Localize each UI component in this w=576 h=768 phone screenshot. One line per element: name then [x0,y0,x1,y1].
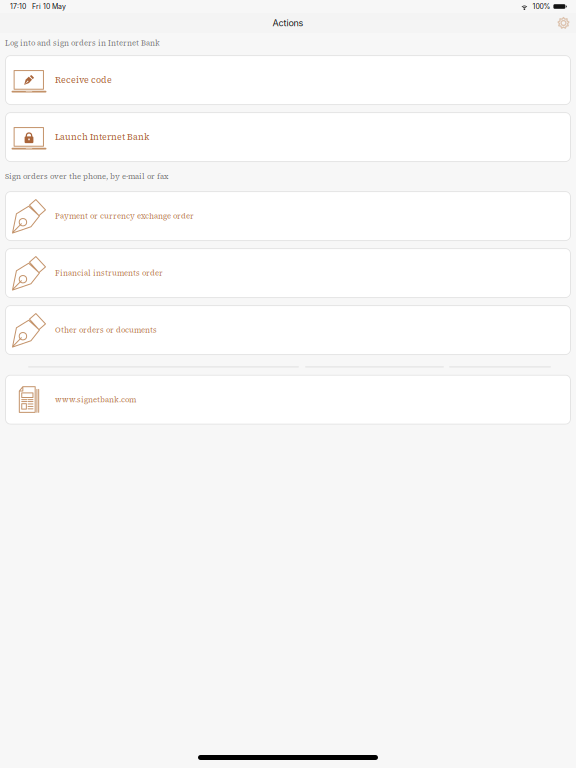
staticText: Log into and sign orders in Internet Ban… [5,38,160,48]
staticText: 17:10 [10,2,26,11]
button[interactable]: Other orders or documents [5,305,571,355]
staticText: Sign orders over the phone, by e-mail or… [5,171,168,182]
staticText: Launch Internet Bank [55,131,149,143]
button[interactable]: Launch Internet Bank [5,112,571,162]
staticText: Actions [272,17,303,28]
button[interactable]: Settings [553,13,574,32]
button[interactable]: www.signetbank.com [5,375,571,425]
staticText: Payment or currency exchange order [55,211,194,221]
staticText: www.signetbank.com [55,395,136,405]
button[interactable]: Payment or currency exchange order [5,191,571,241]
button[interactable]: Financial instruments order [5,248,571,298]
button[interactable]: Receive code [5,55,571,105]
staticText: Financial instruments order [55,268,163,278]
staticText: Receive code [55,74,112,86]
staticText: Fri 10 May [26,2,66,11]
staticText: Other orders or documents [55,325,157,335]
staticText: 100% [528,2,550,11]
